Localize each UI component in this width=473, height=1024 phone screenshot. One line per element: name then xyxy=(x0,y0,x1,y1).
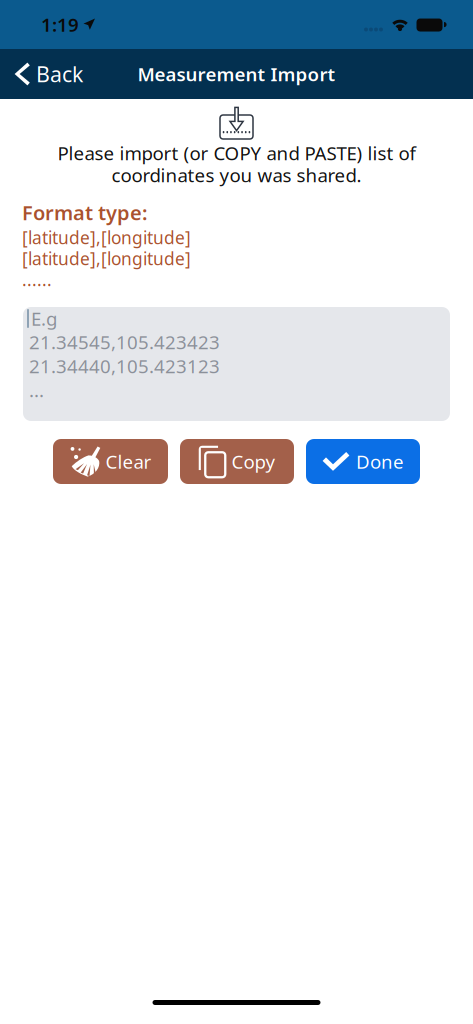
staticText: Clear xyxy=(105,449,151,474)
staticText: Please import (or COPY and PASTE) list o… xyxy=(57,141,415,165)
staticText: [latitude],[longitude] xyxy=(22,247,191,270)
staticText: Back xyxy=(36,60,83,88)
staticText: Copy xyxy=(231,449,275,474)
staticText: 21.34440,105.423123 xyxy=(29,354,220,378)
staticText: ...... xyxy=(22,268,52,291)
staticText: 21.34545,105.423423 xyxy=(29,330,220,354)
staticText: Format type: xyxy=(22,199,148,226)
staticText: 1:19 xyxy=(41,12,79,37)
staticText: E.g xyxy=(31,306,57,331)
button[interactable]: Done xyxy=(306,439,420,484)
button[interactable]: Back xyxy=(0,49,97,99)
button[interactable]: Copy xyxy=(180,439,294,484)
staticText: Done xyxy=(356,449,404,474)
staticText: coordinates you was shared. xyxy=(111,163,361,187)
staticText: Measurement Import xyxy=(137,62,335,86)
staticText: ... xyxy=(29,378,44,402)
button[interactable]: Clear xyxy=(53,439,168,484)
staticText: [latitude],[longitude] xyxy=(22,226,191,249)
